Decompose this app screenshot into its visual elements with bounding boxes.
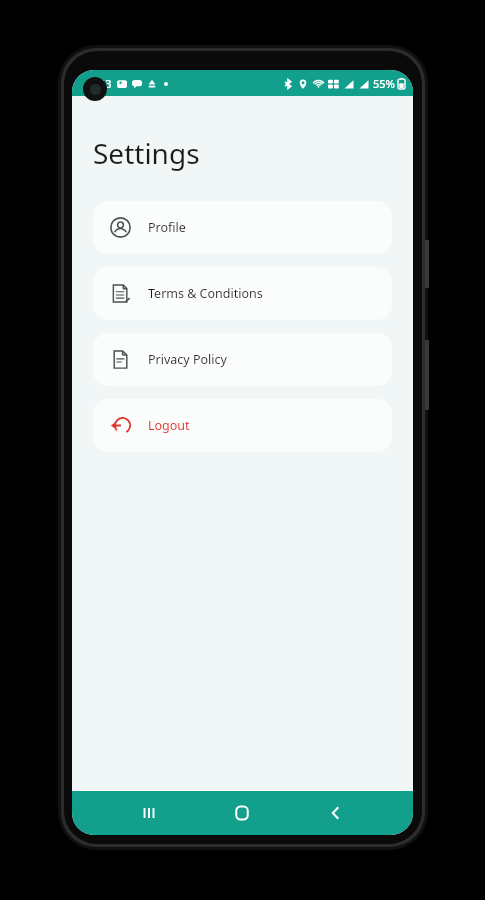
staticText: Terms & Conditions [148, 285, 263, 302]
button[interactable]: Privacy Policy [93, 333, 392, 386]
button[interactable]: Terms & Conditions [93, 267, 392, 320]
staticText: Profile [148, 219, 186, 236]
button[interactable]: Logout [93, 399, 392, 452]
staticText: 55% [373, 76, 395, 91]
staticText: Settings [93, 134, 200, 172]
staticText: 43 [99, 76, 112, 91]
button[interactable]: Recent apps [102, 791, 195, 835]
staticText: Privacy Policy [148, 351, 227, 368]
staticText: Logout [148, 417, 190, 434]
button[interactable]: Back [289, 791, 383, 835]
button[interactable]: Home [195, 791, 289, 835]
button[interactable]: Profile [93, 201, 392, 254]
